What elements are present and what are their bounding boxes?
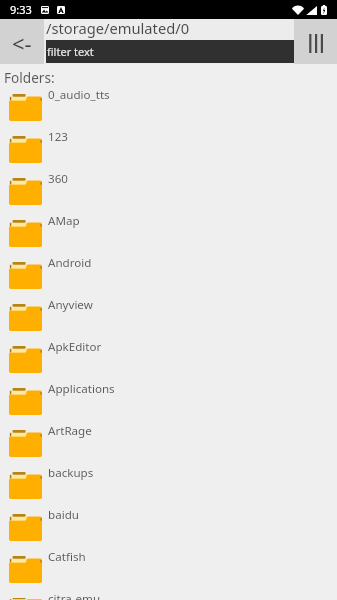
staticText: 123	[48, 129, 68, 145]
staticText: baidu	[48, 507, 79, 523]
button[interactable]: Android	[0, 252, 337, 294]
button[interactable]: Catfish	[0, 546, 337, 588]
staticText: Folders:	[4, 68, 55, 84]
button[interactable]: ApkEditor	[0, 336, 337, 378]
button[interactable]: ArtRage	[0, 420, 337, 462]
staticText: Catfish	[48, 549, 86, 565]
button[interactable]: baidu	[0, 504, 337, 546]
button[interactable]: AMap	[0, 210, 337, 252]
staticText: citra-emu	[48, 591, 101, 600]
staticText: 0_audio_tts	[48, 87, 110, 103]
button[interactable]: Anyview	[0, 294, 337, 336]
button[interactable]: /storage/emulated/0	[46, 19, 294, 40]
staticText: /storage/emulated/0	[46, 18, 190, 38]
staticText: Applications	[48, 381, 115, 397]
staticText: 360	[48, 171, 68, 187]
staticText: Anyview	[48, 297, 93, 313]
staticText: filter text	[47, 44, 94, 59]
staticText: Android	[48, 255, 92, 271]
staticText: 9:33	[10, 2, 32, 17]
staticText: <-	[12, 28, 32, 58]
button[interactable]: backups	[0, 462, 337, 504]
button[interactable]: filter text	[46, 40, 294, 63]
button[interactable]: 0_audio_tts	[0, 84, 337, 126]
staticText: ApkEditor	[48, 339, 102, 355]
button[interactable]: Back	[0, 19, 44, 64]
staticText: ArtRage	[48, 423, 92, 439]
staticText: backups	[48, 465, 94, 481]
staticText: AMap	[48, 213, 80, 229]
button[interactable]: Applications	[0, 378, 337, 420]
button[interactable]: citra-emu	[0, 588, 337, 600]
button[interactable]: 360	[0, 168, 337, 210]
button[interactable]: 123	[0, 126, 337, 168]
button[interactable]: Menu	[294, 19, 337, 64]
